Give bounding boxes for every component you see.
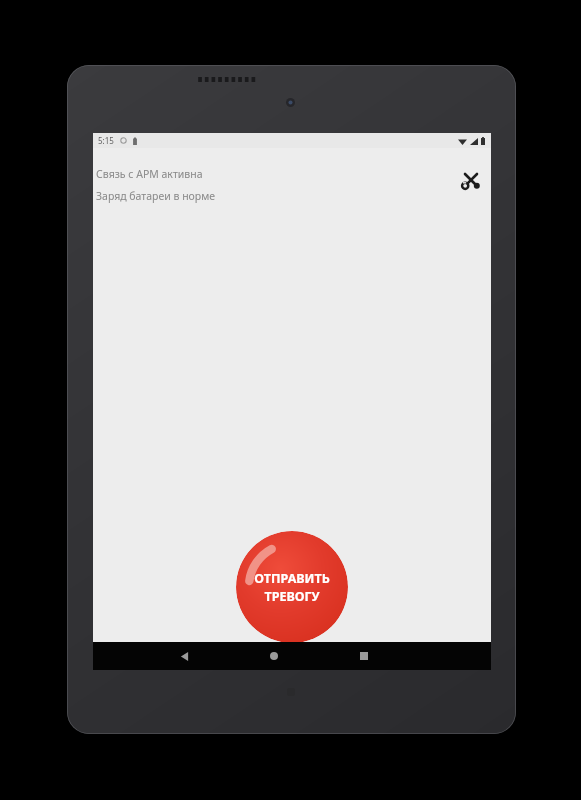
button[interactable]: Recent apps [347, 642, 381, 670]
staticText: ОТПРАВИТЬ [254, 570, 330, 587]
staticText: ТРЕВОГУ [264, 588, 320, 605]
staticText: 5:15 [98, 135, 114, 146]
button[interactable]: Отправить тревогу [236, 531, 348, 643]
staticText: Заряд батареи в норме [96, 189, 216, 203]
button[interactable]: Back [167, 642, 201, 670]
button[interactable]: Settings [457, 166, 485, 194]
button[interactable]: Home [257, 642, 291, 670]
staticText: Связь с АРМ активна [96, 167, 203, 181]
